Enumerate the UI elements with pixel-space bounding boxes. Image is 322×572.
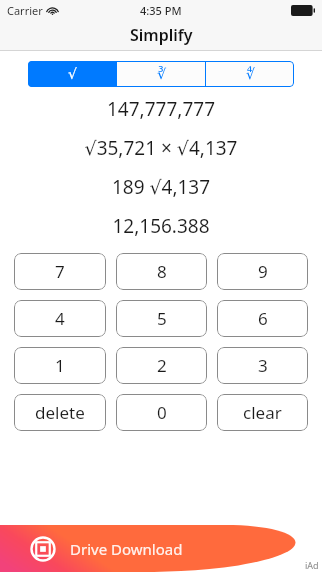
- button[interactable]: 2: [116, 347, 207, 384]
- staticText: 0: [157, 401, 167, 424]
- staticText: √35,721 × √4,137: [0, 135, 322, 161]
- staticText: ∛: [157, 66, 166, 82]
- staticText: 8: [157, 260, 167, 283]
- staticText: 7: [55, 260, 65, 283]
- button[interactable]: 3: [217, 347, 308, 384]
- staticText: clear: [243, 401, 282, 424]
- staticText: √: [68, 66, 77, 82]
- staticText: 4:35 PM: [140, 3, 182, 18]
- staticText: Simplify: [130, 24, 193, 46]
- button[interactable]: Fourth root: [206, 61, 294, 87]
- button[interactable]: 4: [14, 300, 106, 337]
- staticText: ∜: [246, 66, 255, 82]
- staticText: Carrier: [7, 3, 43, 18]
- button[interactable]: Cube root: [117, 61, 205, 87]
- staticText: 9: [258, 260, 268, 283]
- staticText: 12,156.388: [0, 213, 322, 239]
- button[interactable]: 6: [217, 300, 308, 337]
- staticText: 3: [258, 354, 268, 377]
- staticText: 189 √4,137: [0, 174, 322, 200]
- staticText: Drive Download: [70, 539, 183, 559]
- button[interactable]: 5: [116, 300, 207, 337]
- staticText: 147,777,777: [0, 96, 322, 122]
- staticText: delete: [35, 401, 85, 424]
- staticText: 2: [157, 354, 167, 377]
- button[interactable]: clear: [217, 394, 308, 431]
- button[interactable]: 9: [217, 253, 308, 290]
- button[interactable]: Drive Download: [0, 525, 322, 572]
- button[interactable]: delete: [14, 394, 106, 431]
- button[interactable]: 0: [116, 394, 207, 431]
- staticText: iAd: [305, 559, 319, 571]
- staticText: 1: [55, 354, 65, 377]
- staticText: 6: [258, 307, 268, 330]
- staticText: 4: [55, 307, 65, 330]
- button[interactable]: 8: [116, 253, 207, 290]
- button[interactable]: 7: [14, 253, 106, 290]
- button[interactable]: √: [28, 61, 116, 87]
- staticText: 5: [157, 307, 167, 330]
- button[interactable]: 1: [14, 347, 106, 384]
